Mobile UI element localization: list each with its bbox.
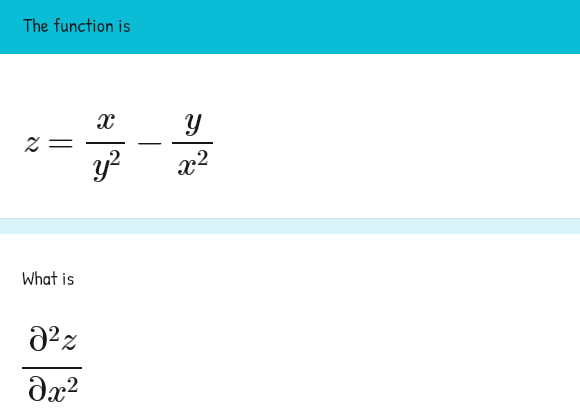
- staticText: 𝑥2: [177, 147, 208, 182]
- staticText: 𝑧: [60, 323, 76, 357]
- staticText: 𝑥2: [48, 374, 79, 409]
- staticText: 𝑦2: [92, 147, 120, 182]
- button[interactable]: second partial derivative of z with resp…: [16, 318, 88, 408]
- staticText: What is: [22, 264, 75, 291]
- staticText: ∂: [28, 374, 48, 408]
- button[interactable]: What is: [22, 264, 75, 291]
- staticText: 𝑧: [24, 125, 40, 159]
- staticText: 𝑦2: [93, 147, 121, 182]
- button[interactable]: z equals x over y squared minus y over x…: [16, 96, 224, 192]
- staticText: =: [48, 125, 75, 159]
- staticText: ∂2: [28, 323, 60, 358]
- staticText: 𝑦: [185, 102, 202, 136]
- staticText: ∂2: [29, 323, 61, 358]
- button[interactable]: The function is: [0, 0, 580, 54]
- staticText: =: [47, 125, 74, 159]
- staticText: 𝑥: [97, 102, 117, 136]
- staticText: −: [136, 125, 163, 159]
- staticText: 𝑧: [61, 323, 77, 357]
- staticText: 𝑥2: [178, 147, 209, 182]
- staticText: 𝑥: [96, 102, 116, 136]
- staticText: 𝑥2: [47, 374, 78, 409]
- staticText: −: [137, 125, 164, 159]
- staticText: 𝑧: [23, 125, 39, 159]
- staticText: ∂: [27, 374, 47, 408]
- staticText: The function is: [23, 11, 131, 38]
- staticText: 𝑦: [184, 102, 201, 136]
